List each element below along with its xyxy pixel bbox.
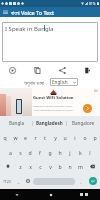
button[interactable]: x xyxy=(25,159,35,173)
staticText: a xyxy=(9,149,12,156)
staticText: n xyxy=(68,163,72,170)
button[interactable]: Share xyxy=(50,65,75,76)
staticText: w xyxy=(13,134,18,141)
staticText: i xyxy=(74,134,76,141)
staticText: h xyxy=(58,149,62,156)
button[interactable]: w xyxy=(10,130,20,145)
staticText: p xyxy=(93,134,97,141)
staticText: Bangalore xyxy=(72,120,95,126)
button[interactable]: h xyxy=(55,145,65,159)
staticText: Ad xyxy=(94,89,98,93)
button[interactable]: j xyxy=(65,145,75,159)
button[interactable]: f xyxy=(35,145,45,159)
staticText: f xyxy=(39,149,41,156)
button[interactable]: Advertisement xyxy=(0,88,100,116)
staticText: z xyxy=(19,163,22,170)
button[interactable]: Bangladesh xyxy=(33,116,66,130)
button[interactable]: Bangla xyxy=(0,116,32,130)
button[interactable]: t xyxy=(40,130,50,145)
button[interactable]: s xyxy=(15,145,25,159)
button[interactable]: , xyxy=(14,173,23,189)
button[interactable]: Copy text xyxy=(25,65,50,76)
staticText: u xyxy=(63,134,67,141)
staticText: d xyxy=(28,149,32,156)
staticText: English xyxy=(52,79,68,85)
button[interactable]: Save as PDF xyxy=(75,65,100,76)
button[interactable]: Hide keyboard xyxy=(0,189,34,200)
button[interactable]: Space xyxy=(33,178,75,185)
staticText: Guest WiFi Solution xyxy=(33,95,74,101)
button[interactable]: I Speak in Bangla xyxy=(2,22,98,62)
button[interactable]: p xyxy=(90,130,100,145)
staticText: t xyxy=(44,134,46,141)
button[interactable]: e xyxy=(20,130,30,145)
staticText: k xyxy=(79,149,82,156)
staticText: v xyxy=(49,163,52,170)
staticText: ?123 xyxy=(3,179,11,184)
staticText: Bangla xyxy=(9,120,24,126)
staticText: Offering a simple seamless Guest xyxy=(33,104,73,107)
staticText: অনুবাদ ভাষা xyxy=(24,79,45,86)
staticText: , xyxy=(18,178,20,185)
staticText: I Speak in Bangla xyxy=(5,25,54,33)
button[interactable]: Bangalore xyxy=(67,116,100,130)
button[interactable]: English xyxy=(50,78,78,86)
button[interactable]: Backspace xyxy=(85,159,100,173)
staticText: 81% xyxy=(89,2,96,6)
button[interactable]: Open navigation menu xyxy=(0,7,11,17)
button[interactable]: Enter xyxy=(85,173,100,189)
staticText: WiFi Marketing solution to hotels xyxy=(34,108,73,111)
button[interactable]: r xyxy=(30,130,40,145)
staticText: Bangladesh xyxy=(36,120,63,126)
button[interactable]: n xyxy=(65,159,75,173)
staticText: g xyxy=(48,149,52,156)
button[interactable]: l xyxy=(85,145,95,159)
staticText: r xyxy=(34,134,37,141)
staticText: b xyxy=(58,163,62,170)
staticText: e xyxy=(24,134,27,141)
button[interactable]: Shift xyxy=(0,159,15,173)
button[interactable]: Open advertisement xyxy=(83,104,92,113)
button[interactable]: u xyxy=(60,130,70,145)
staticText: c xyxy=(39,163,42,170)
button[interactable]: g xyxy=(45,145,55,159)
button[interactable]: i xyxy=(70,130,80,145)
button[interactable]: c xyxy=(35,159,45,173)
button[interactable]: b xyxy=(55,159,65,173)
staticText: o xyxy=(83,134,87,141)
button[interactable]: k xyxy=(75,145,85,159)
staticText: s xyxy=(19,149,22,156)
staticText: q xyxy=(3,134,7,141)
staticText: বাংলা Voice To Text xyxy=(11,9,55,16)
button[interactable]: . xyxy=(76,173,85,189)
button[interactable]: d xyxy=(25,145,35,159)
staticText: m xyxy=(78,163,83,170)
staticText: j xyxy=(69,149,71,156)
button[interactable]: q xyxy=(0,130,10,145)
staticText: x xyxy=(29,163,32,170)
button[interactable]: m xyxy=(75,159,85,173)
button[interactable]: Switch language xyxy=(23,173,32,189)
button[interactable]: Home xyxy=(34,189,67,200)
button[interactable]: ?123 xyxy=(0,173,14,189)
staticText: l xyxy=(89,149,91,156)
staticText: . xyxy=(80,178,82,185)
button[interactable]: a xyxy=(5,145,15,159)
button[interactable]: v xyxy=(45,159,55,173)
staticText: y xyxy=(54,134,57,141)
button[interactable]: Start recording xyxy=(0,65,25,76)
button[interactable]: z xyxy=(15,159,25,173)
button[interactable]: y xyxy=(50,130,60,145)
button[interactable]: Recent apps xyxy=(67,189,100,200)
button[interactable]: o xyxy=(80,130,90,145)
